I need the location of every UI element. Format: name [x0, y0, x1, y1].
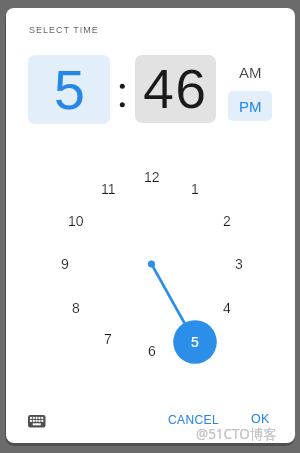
staticText: 12	[144, 169, 160, 185]
button[interactable]: AM	[228, 57, 272, 87]
staticText: AM	[239, 64, 262, 81]
staticText: OK	[251, 412, 270, 426]
staticText: 46	[143, 58, 208, 120]
staticText: 7	[104, 331, 112, 347]
staticText: 6	[148, 343, 156, 359]
staticText: CANCEL	[168, 413, 220, 426]
button[interactable]: 46	[135, 55, 216, 123]
staticText: 2	[223, 213, 231, 229]
staticText: 11	[101, 181, 116, 197]
button[interactable]	[22, 409, 52, 434]
staticText: 8	[72, 300, 80, 316]
staticText: 1	[191, 181, 199, 197]
button[interactable]: PM	[228, 91, 272, 121]
staticText: @51CTO博客	[196, 425, 277, 443]
staticText: PM	[239, 98, 262, 115]
staticText: 9	[61, 256, 69, 272]
button[interactable]: 5	[28, 55, 110, 124]
staticText: 10	[68, 213, 84, 229]
staticText: SELECT TIME	[29, 25, 99, 35]
button[interactable]: OK	[242, 406, 278, 432]
staticText: 5	[191, 334, 199, 350]
staticText: 5	[54, 59, 85, 121]
button[interactable]: CANCEL	[160, 406, 228, 432]
staticText: 3	[235, 256, 243, 272]
staticText: 4	[223, 300, 231, 316]
